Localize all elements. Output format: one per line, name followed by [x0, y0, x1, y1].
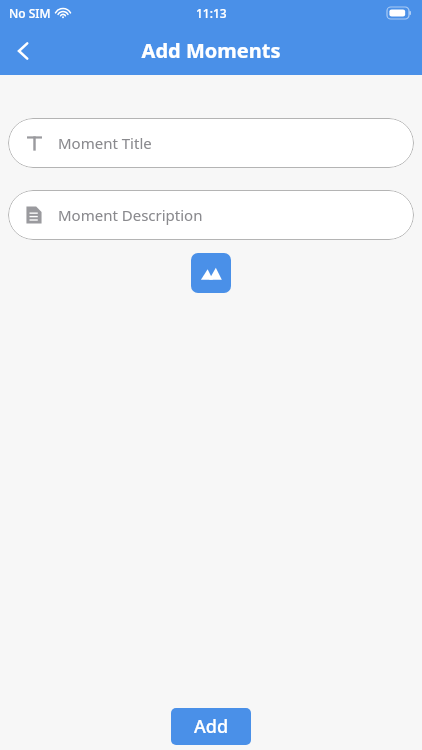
staticText: Add: [194, 714, 229, 739]
staticText: 11:13: [196, 5, 227, 21]
button[interactable]: Back: [0, 27, 48, 75]
staticText: Add Moments: [0, 37, 422, 64]
staticText: No SIM: [9, 5, 51, 21]
button[interactable]: Pick image: [191, 253, 231, 293]
staticText: Moment Description: [58, 205, 203, 225]
staticText: Moment Title: [58, 133, 152, 153]
button[interactable]: Moment Title: [8, 118, 414, 168]
button[interactable]: Add: [171, 708, 251, 745]
button[interactable]: Moment Description: [8, 190, 414, 240]
